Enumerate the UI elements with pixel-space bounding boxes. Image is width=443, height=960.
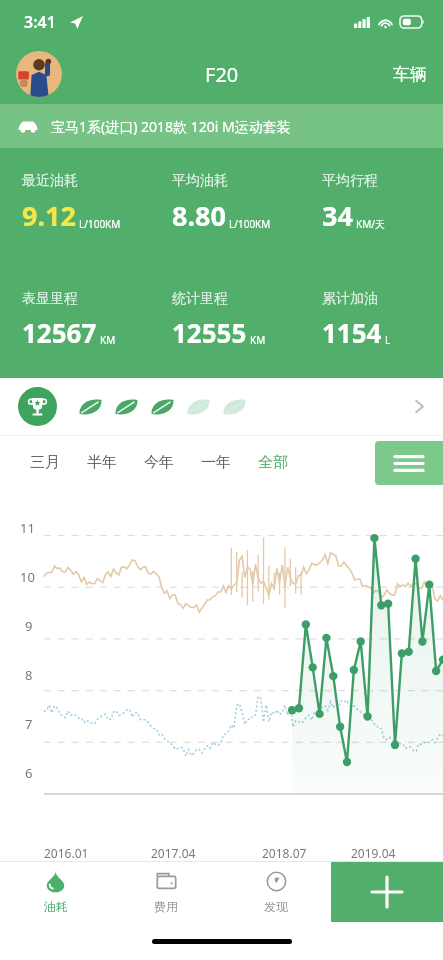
button[interactable]: 油耗 (0, 862, 111, 922)
button[interactable]: 今年 (134, 444, 184, 481)
staticText: 一年 (201, 453, 231, 472)
staticText: 平均油耗 (172, 172, 228, 190)
button[interactable]: More (0, 378, 443, 435)
staticText: 9 (25, 617, 33, 635)
staticText: 9.12 (22, 197, 76, 234)
staticText: 统计里程 (172, 290, 228, 308)
button[interactable]: 宝马1系(进口) 2018款 120i M运动套装 (0, 104, 443, 148)
staticText: 11 (20, 519, 35, 537)
staticText: F20 (205, 61, 239, 88)
button[interactable]: 车辆 (379, 50, 443, 99)
staticText: 10 (20, 568, 35, 586)
staticText: 发现 (264, 899, 288, 914)
staticText: 34 (322, 197, 353, 234)
staticText: 8 (25, 666, 33, 684)
staticText: 平均行程 (322, 172, 378, 190)
staticText: 8.80 (172, 197, 226, 234)
staticText: 2018.07 (262, 845, 307, 861)
button[interactable]: Menu (375, 441, 443, 485)
staticText: L (385, 333, 391, 347)
staticText: 2016.01 (44, 845, 89, 861)
staticText: 宝马1系(进口) 2018款 120i M运动套装 (51, 117, 291, 136)
staticText: 12567 (22, 315, 97, 350)
staticText: 累计加油 (322, 290, 378, 308)
staticText: KM/天 (356, 217, 385, 231)
staticText: 今年 (144, 453, 174, 472)
staticText: 7 (25, 715, 33, 733)
other: More (414, 397, 425, 416)
button[interactable]: 费用 (111, 862, 221, 922)
staticText: 费用 (154, 899, 178, 914)
button[interactable]: 一年 (191, 444, 241, 481)
staticText: 三月 (30, 453, 60, 472)
staticText: L/100KM (79, 217, 121, 231)
staticText: 6 (25, 764, 33, 782)
staticText: 半年 (87, 453, 117, 472)
button[interactable]: 发现 (221, 862, 331, 922)
staticText: 表显里程 (22, 290, 78, 308)
button[interactable]: 全部 (248, 444, 298, 481)
button[interactable]: 三月 (20, 444, 70, 481)
staticText: 最近油耗 (22, 172, 78, 190)
staticText: 2017.04 (151, 845, 196, 861)
staticText: KM (250, 333, 266, 347)
staticText: 全部 (258, 453, 288, 472)
staticText: 油耗 (44, 899, 68, 914)
staticText: 12555 (172, 315, 247, 350)
button[interactable]: 半年 (77, 444, 127, 481)
staticText: KM (100, 333, 116, 347)
staticText: 3:41 (24, 11, 56, 33)
staticText: 2019.04 (351, 845, 396, 861)
staticText: 1154 (322, 315, 382, 350)
button[interactable]: Profile (16, 51, 62, 97)
staticText: L/100KM (229, 217, 271, 231)
button[interactable]: Add (331, 862, 443, 922)
